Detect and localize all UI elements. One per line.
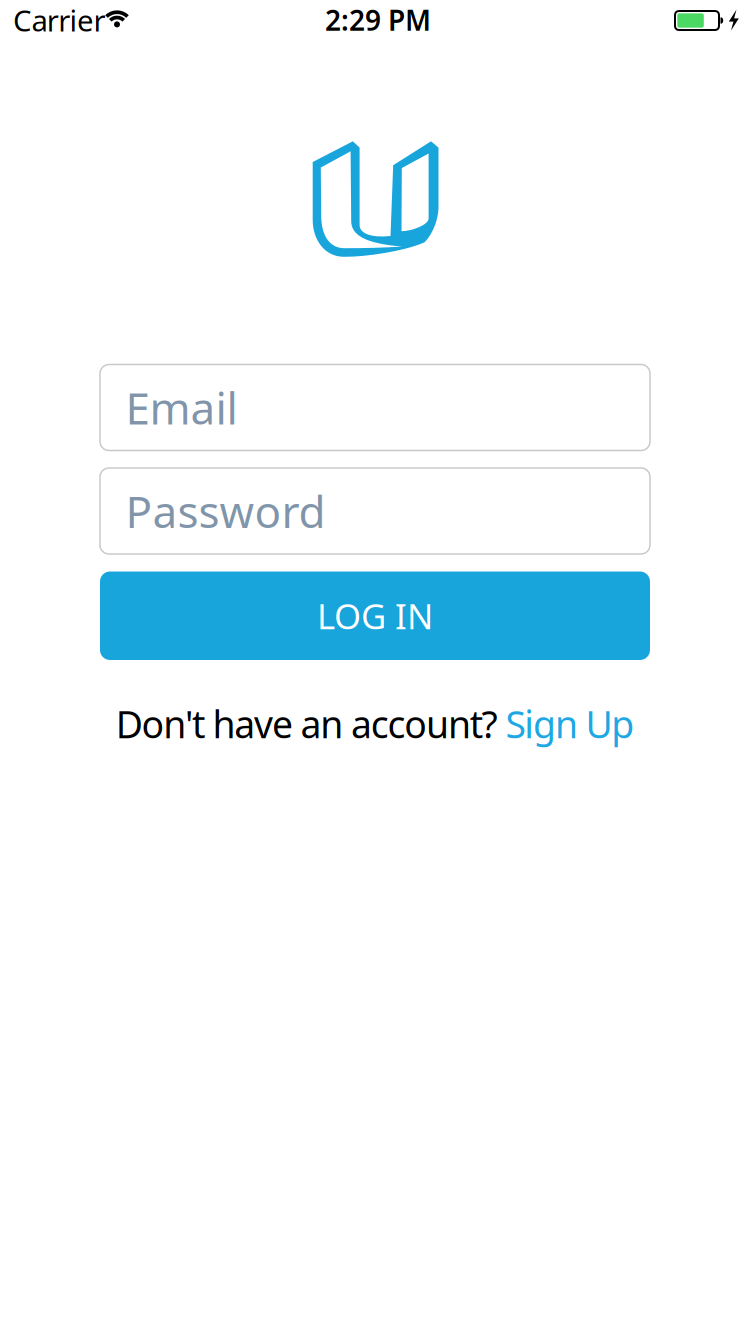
staticText: Don't have an account? (116, 699, 497, 749)
staticText: Password (125, 482, 325, 540)
staticText: Carrier (13, 0, 105, 39)
button[interactable]: LOG IN (100, 571, 650, 660)
staticText: LOG IN (317, 593, 433, 639)
button[interactable]: Password (100, 468, 650, 554)
staticText: 2:29 PM (325, 1, 431, 39)
button[interactable]: Sign Up (505, 699, 634, 749)
button[interactable]: Email (100, 364, 650, 450)
staticText: Sign Up (505, 699, 634, 749)
staticText: Email (125, 378, 237, 437)
